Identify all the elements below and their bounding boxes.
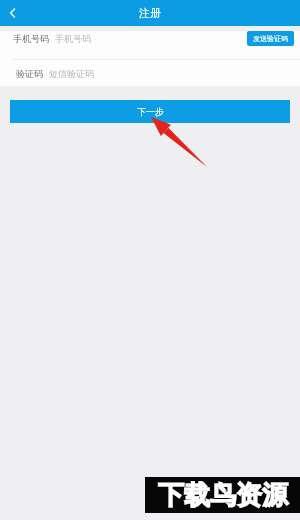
staticText: 验证码: [13, 68, 43, 79]
staticText: 下载鸟资源: [158, 479, 288, 512]
staticText: 发送验证码: [253, 34, 288, 43]
button[interactable]: Back: [0, 0, 26, 26]
button[interactable]: 下一步: [10, 100, 290, 123]
staticText: 短信验证码: [49, 68, 94, 79]
staticText: 下一步: [137, 106, 164, 117]
button[interactable]: 发送验证码: [247, 31, 294, 46]
staticText: 手机号码: [55, 33, 91, 44]
staticText: 注册: [139, 6, 161, 20]
staticText: 手机号码: [13, 33, 49, 44]
button[interactable]: 验证码: [0, 60, 300, 86]
